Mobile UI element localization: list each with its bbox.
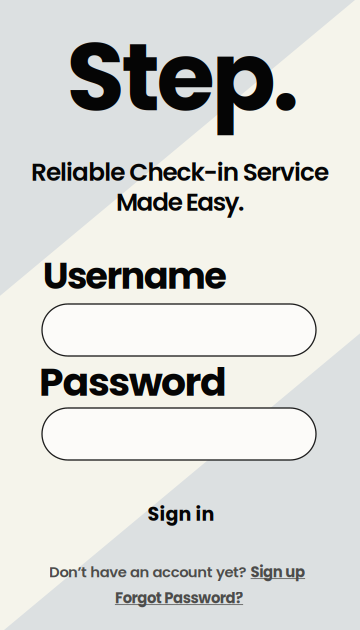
- button[interactable]: Sign in: [127, 490, 234, 538]
- staticText: Made Easy.: [116, 185, 244, 219]
- button[interactable]: Forgot Password?: [109, 584, 249, 612]
- staticText: Step.: [66, 11, 299, 143]
- button[interactable]: Username field: [42, 304, 316, 356]
- staticText: Username: [43, 250, 227, 302]
- staticText: Sign up: [251, 562, 305, 582]
- staticText: Forgot Password?: [115, 588, 243, 608]
- staticText: Password: [39, 354, 227, 410]
- staticText: Sign in: [147, 501, 214, 527]
- button[interactable]: Password field: [42, 408, 316, 460]
- staticText: Reliable Check-in Service: [31, 155, 329, 189]
- button[interactable]: Sign up: [251, 562, 305, 582]
- staticText: Don’t have an account yet?: [49, 562, 247, 582]
